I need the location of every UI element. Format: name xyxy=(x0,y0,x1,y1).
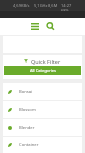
staticText: 4,69KB/s xyxy=(13,3,30,8)
staticText: 14:27 68% xyxy=(61,3,79,11)
staticText: Blossom xyxy=(19,107,36,113)
button[interactable]: Blossom xyxy=(3,101,82,118)
staticText: All Categories xyxy=(30,68,56,73)
staticText: Container xyxy=(19,142,39,148)
button[interactable]: All Categories xyxy=(4,66,81,75)
button[interactable]: Container xyxy=(3,137,82,153)
button[interactable]: Blender xyxy=(3,119,82,136)
staticText: 5,1GHz xyxy=(34,3,48,8)
staticText: Bonsai xyxy=(19,89,33,95)
button[interactable]: Search xyxy=(45,21,56,32)
staticText: Blender xyxy=(19,125,35,131)
button[interactable]: Bonsai xyxy=(3,83,82,100)
button[interactable]: Menu xyxy=(29,21,40,32)
staticText: Quick Filter xyxy=(31,58,61,65)
staticText: 8,6M xyxy=(48,3,58,8)
